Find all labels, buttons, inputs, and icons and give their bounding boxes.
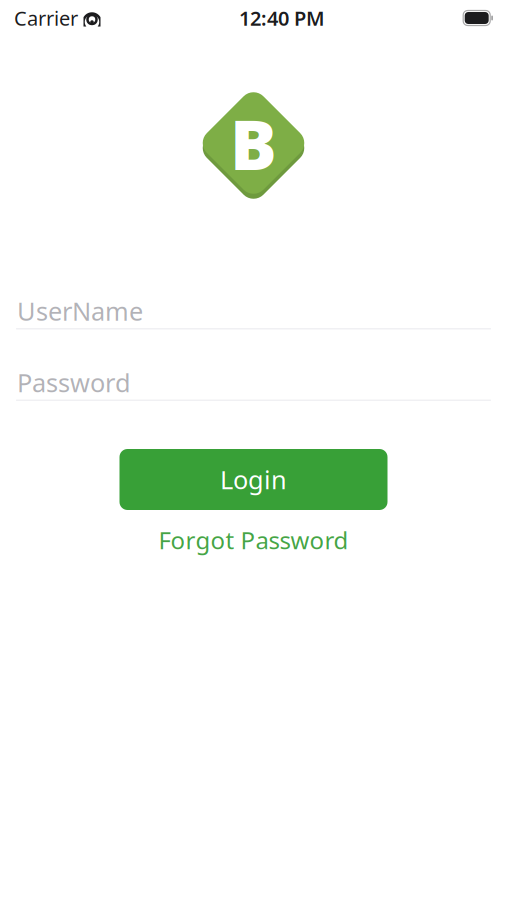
- staticText: B: [230, 97, 277, 189]
- button[interactable]: Login: [119, 449, 387, 510]
- button[interactable]: Forgot Password: [142, 516, 364, 564]
- staticText: Password: [17, 366, 131, 399]
- staticText: Carrier: [14, 5, 78, 31]
- staticText: 12:40 PM: [239, 5, 325, 31]
- staticText: Forgot Password: [158, 524, 348, 556]
- staticText: Login: [220, 463, 287, 496]
- staticText: UserName: [17, 294, 143, 328]
